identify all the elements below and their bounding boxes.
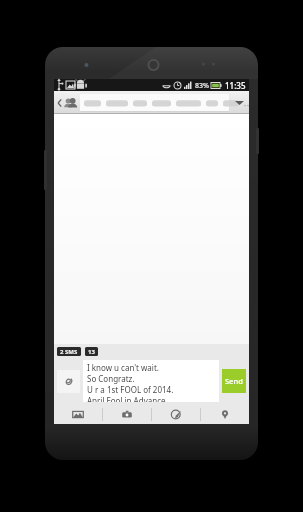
staticText: 2 SMS <box>60 348 78 356</box>
button[interactable]: Share location <box>201 404 249 424</box>
button[interactable]: Navigate up, recipients <box>54 91 80 114</box>
staticText: 83% <box>195 81 209 91</box>
button[interactable]: Insert picture <box>54 404 102 424</box>
staticText: So Congratz. <box>87 373 135 384</box>
button[interactable]: Sketch <box>152 404 200 424</box>
button[interactable] <box>80 94 229 112</box>
button[interactable]: Attach <box>57 370 80 393</box>
button[interactable]: Send <box>222 369 246 393</box>
staticText: U r a 1st FOOL of 2014. <box>87 384 174 395</box>
staticText: 13 <box>88 348 95 356</box>
staticText: 11:35 <box>225 80 246 91</box>
staticText: Send <box>225 376 243 386</box>
button[interactable]: Take photo <box>103 404 151 424</box>
staticText: April Fool in Advance <box>87 395 166 402</box>
button[interactable]: Show all recipients <box>229 91 249 114</box>
button[interactable]: I know u can't wait. <box>83 360 219 402</box>
staticText: I know u can't wait. <box>87 362 159 373</box>
